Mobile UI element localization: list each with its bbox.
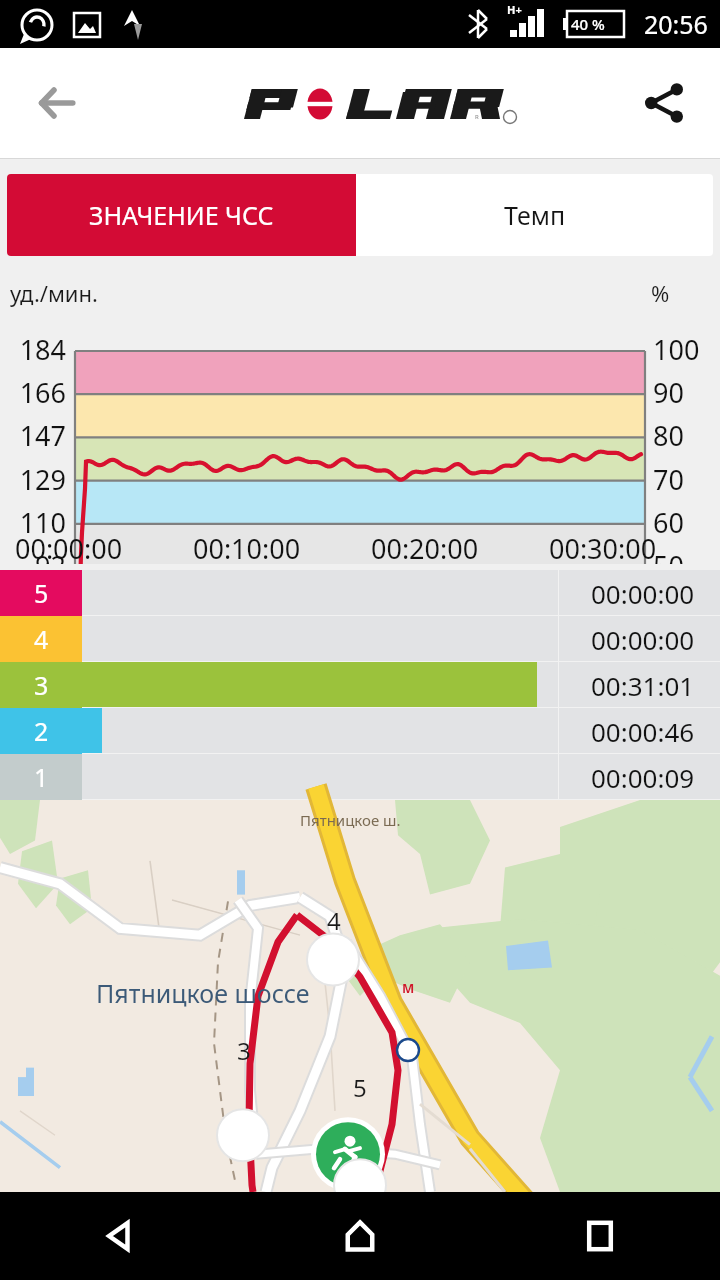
staticText: H+	[507, 2, 522, 17]
staticText: 20:56	[644, 7, 708, 41]
staticText: 70	[653, 461, 684, 498]
button[interactable]: Back	[24, 71, 88, 135]
staticText: 4	[34, 622, 49, 656]
staticText: 00:00:00	[591, 576, 695, 611]
staticText: 147	[0, 417, 66, 454]
staticText: 5	[34, 576, 49, 610]
staticText: 40 %	[571, 14, 605, 34]
staticText: уд./мин.	[10, 278, 98, 308]
button[interactable]: 5	[0, 570, 720, 616]
staticText: М	[402, 979, 415, 997]
staticText: 129	[0, 461, 66, 498]
button[interactable]: 3	[0, 662, 720, 708]
staticText: 3	[237, 1034, 251, 1067]
staticText: 2	[34, 714, 49, 748]
staticText: 00:30:00	[549, 530, 657, 567]
staticText: 50	[653, 547, 684, 584]
button[interactable]: 4	[0, 616, 720, 662]
button[interactable]: ЗНАЧЕНИЕ ЧСС	[7, 174, 356, 256]
staticText: 90	[653, 374, 684, 411]
button[interactable]: Share	[632, 71, 696, 135]
staticText: 4	[327, 904, 341, 937]
button[interactable]: Пятницкое шоссе	[0, 800, 720, 1192]
staticText: 3	[34, 668, 49, 702]
staticText: 1	[34, 760, 49, 794]
staticText: 80	[653, 417, 684, 454]
staticText: %	[651, 278, 670, 308]
staticText: ЗНАЧЕНИЕ ЧСС	[89, 198, 274, 232]
staticText: 00:00:46	[591, 714, 695, 749]
button[interactable]: 2	[0, 708, 720, 754]
staticText: 00:00:00	[15, 530, 123, 567]
staticText: 60	[653, 504, 684, 541]
staticText: 5	[353, 1071, 367, 1104]
staticText: R	[475, 113, 479, 121]
button[interactable]: 1	[0, 754, 720, 800]
staticText: 184	[0, 331, 66, 368]
staticText: Пятницкое ш.	[300, 810, 401, 830]
staticText: 166	[0, 374, 66, 411]
staticText: 00:00:09	[591, 760, 695, 795]
staticText: 00:31:01	[591, 668, 695, 703]
button[interactable]: Back	[0, 1192, 240, 1280]
staticText: 00:10:00	[193, 530, 301, 567]
staticText: 00:00:00	[591, 622, 695, 657]
staticText: 00:20:00	[371, 530, 479, 567]
staticText: Темп	[504, 198, 566, 232]
staticText: Пятницкое шоссе	[96, 976, 310, 1010]
button[interactable]: Темп	[356, 174, 713, 256]
staticText: 100	[653, 331, 700, 368]
button[interactable]: Recents	[480, 1192, 720, 1280]
button[interactable]: Home	[240, 1192, 480, 1280]
staticText: 92	[0, 547, 66, 584]
staticText: 110	[0, 504, 66, 541]
